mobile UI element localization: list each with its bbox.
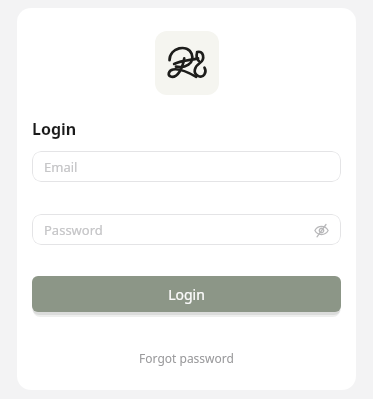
button[interactable]: Email [32, 151, 341, 182]
staticText: Login [168, 285, 205, 304]
button[interactable]: Login [32, 276, 341, 312]
button[interactable]: Password [32, 214, 341, 245]
button[interactable]: Forgot password [129, 346, 244, 370]
staticText: Password [44, 221, 103, 239]
staticText: Forgot password [139, 350, 234, 366]
staticText: Email [44, 158, 78, 176]
other: Brand logo [164, 40, 210, 86]
staticText: Login [32, 118, 77, 140]
button[interactable]: Show password [311, 220, 331, 240]
